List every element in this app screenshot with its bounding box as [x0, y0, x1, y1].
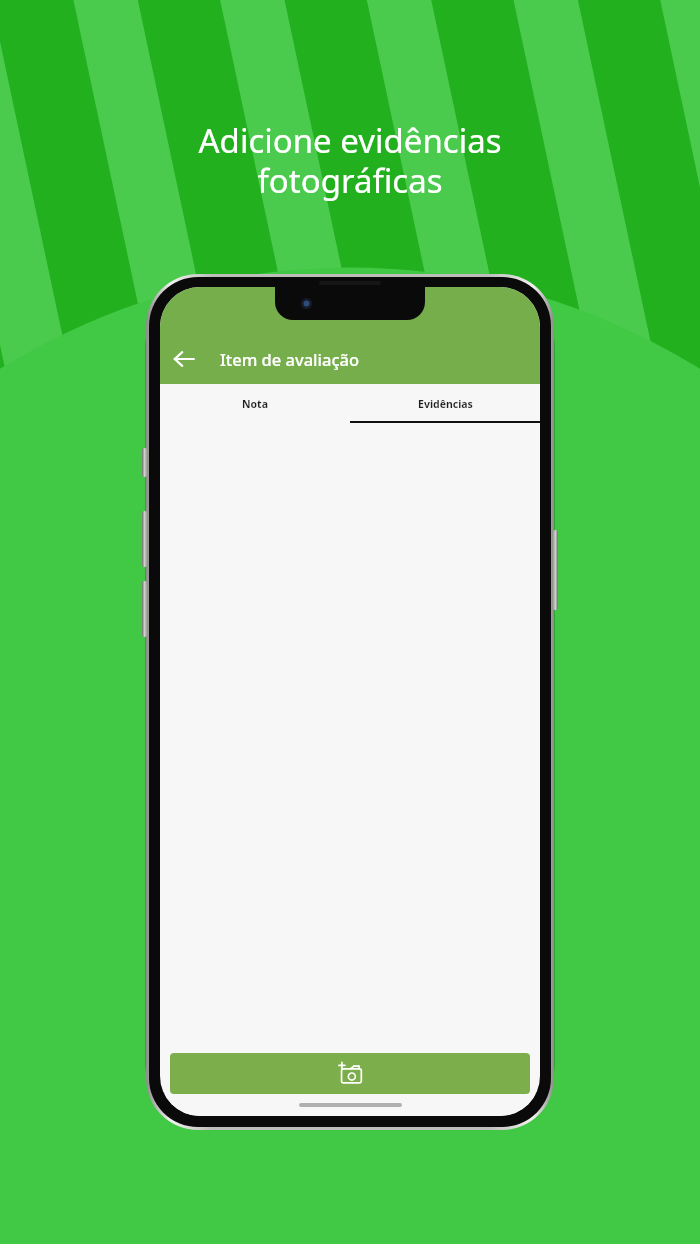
button[interactable]: Evidências: [350, 384, 540, 423]
staticText: Adicione evidências fotográficas: [198, 118, 502, 203]
button[interactable]: Adicionar foto: [170, 1053, 530, 1094]
button[interactable]: Voltar: [160, 335, 208, 383]
staticText: Item de avaliação: [220, 348, 360, 370]
staticText: Nota: [242, 397, 268, 411]
button[interactable]: Nota: [160, 384, 350, 423]
staticText: Evidências: [418, 397, 473, 411]
